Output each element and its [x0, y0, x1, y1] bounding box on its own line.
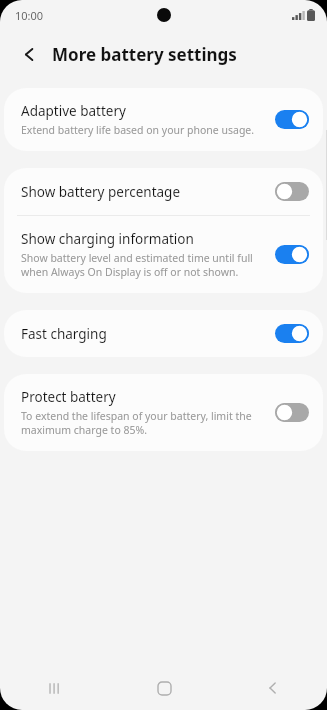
- staticText: 10:00: [15, 8, 44, 23]
- button[interactable]: Show battery percentage: [4, 168, 323, 215]
- button[interactable]: Show charging information: [4, 216, 323, 293]
- button[interactable]: On: [275, 324, 309, 343]
- button[interactable]: Home: [141, 666, 187, 710]
- button[interactable]: On: [275, 245, 309, 264]
- button[interactable]: Adaptive battery: [4, 88, 323, 151]
- staticText: Fast charging: [21, 325, 107, 343]
- button[interactable]: On: [275, 110, 309, 129]
- button[interactable]: Off: [275, 403, 309, 422]
- button[interactable]: Protect battery: [4, 374, 323, 451]
- staticText: More battery settings: [52, 43, 237, 66]
- staticText: Show battery percentage: [21, 183, 181, 201]
- button[interactable]: Back: [14, 39, 44, 69]
- staticText: Adaptive battery: [21, 102, 126, 120]
- staticText: Show charging information: [21, 230, 194, 248]
- button[interactable]: Fast charging: [4, 310, 323, 357]
- button[interactable]: Back: [250, 666, 296, 710]
- button[interactable]: Recent apps: [32, 666, 78, 710]
- staticText: To extend the lifespan of your battery, …: [21, 409, 265, 437]
- staticText: Protect battery: [21, 388, 116, 406]
- button[interactable]: Off: [275, 182, 309, 201]
- staticText: Show battery level and estimated time un…: [21, 251, 265, 279]
- staticText: Extend battery life based on your phone …: [21, 123, 255, 137]
